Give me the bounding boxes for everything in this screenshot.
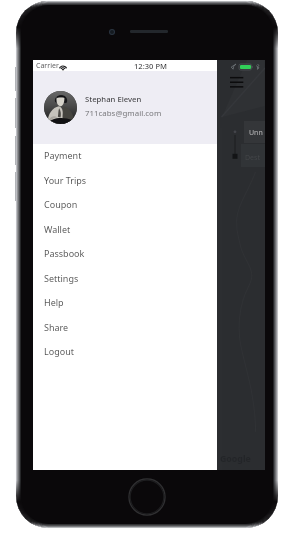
staticText: 711cabs@gmail.com (85, 108, 162, 119)
staticText: Carrier (36, 61, 59, 71)
button[interactable]: Wallet (33, 216, 217, 241)
staticText: Your Trips (44, 174, 87, 186)
button[interactable]: Open navigation menu (226, 73, 248, 92)
staticText: Stephan Eleven (85, 94, 142, 104)
staticText: Passbook (44, 247, 85, 259)
button[interactable]: Coupon (33, 191, 217, 216)
staticText: Logout (44, 345, 74, 357)
button[interactable]: Your Trips (33, 167, 217, 192)
staticText: Payment (44, 149, 82, 161)
button[interactable]: Passbook (33, 240, 217, 265)
staticText: 12:30 PM (134, 61, 168, 71)
staticText: Dest (245, 153, 260, 163)
staticText: Help (44, 296, 64, 308)
staticText: Coupon (44, 198, 78, 210)
staticText: Share (44, 321, 69, 333)
button[interactable]: Share (33, 314, 217, 339)
staticText: Unn (249, 128, 263, 138)
staticText: Settings (44, 272, 79, 284)
staticText: Wallet (44, 223, 71, 235)
button[interactable]: Settings (33, 265, 217, 290)
button[interactable]: Logout (33, 338, 217, 363)
button[interactable]: Help (33, 289, 217, 314)
button[interactable]: Payment (33, 142, 217, 167)
